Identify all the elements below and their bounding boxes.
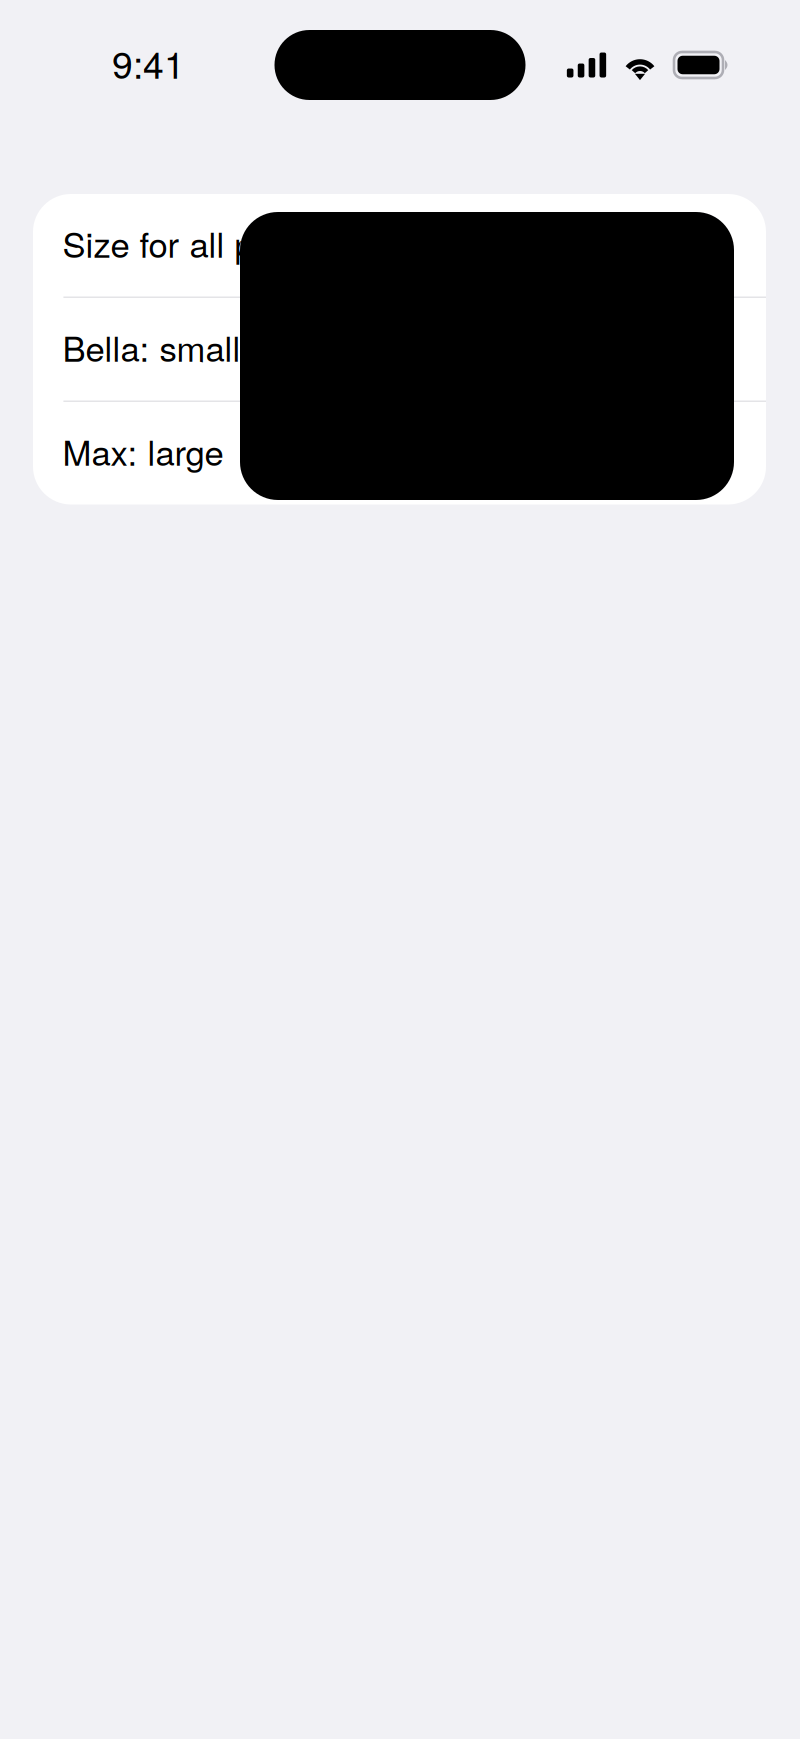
staticText: Size for all pets bbox=[62, 218, 299, 267]
staticText: Max: large bbox=[62, 426, 223, 475]
button[interactable]: small bbox=[240, 230, 734, 314]
button[interactable]: Size for all pets bbox=[33, 194, 766, 296]
button[interactable]: Max: large bbox=[33, 402, 766, 504]
button[interactable]: large bbox=[240, 398, 734, 482]
staticText: 9:41 bbox=[112, 36, 185, 89]
button[interactable]: Bella: small bbox=[33, 298, 766, 400]
staticText: Bella: small bbox=[62, 322, 240, 371]
